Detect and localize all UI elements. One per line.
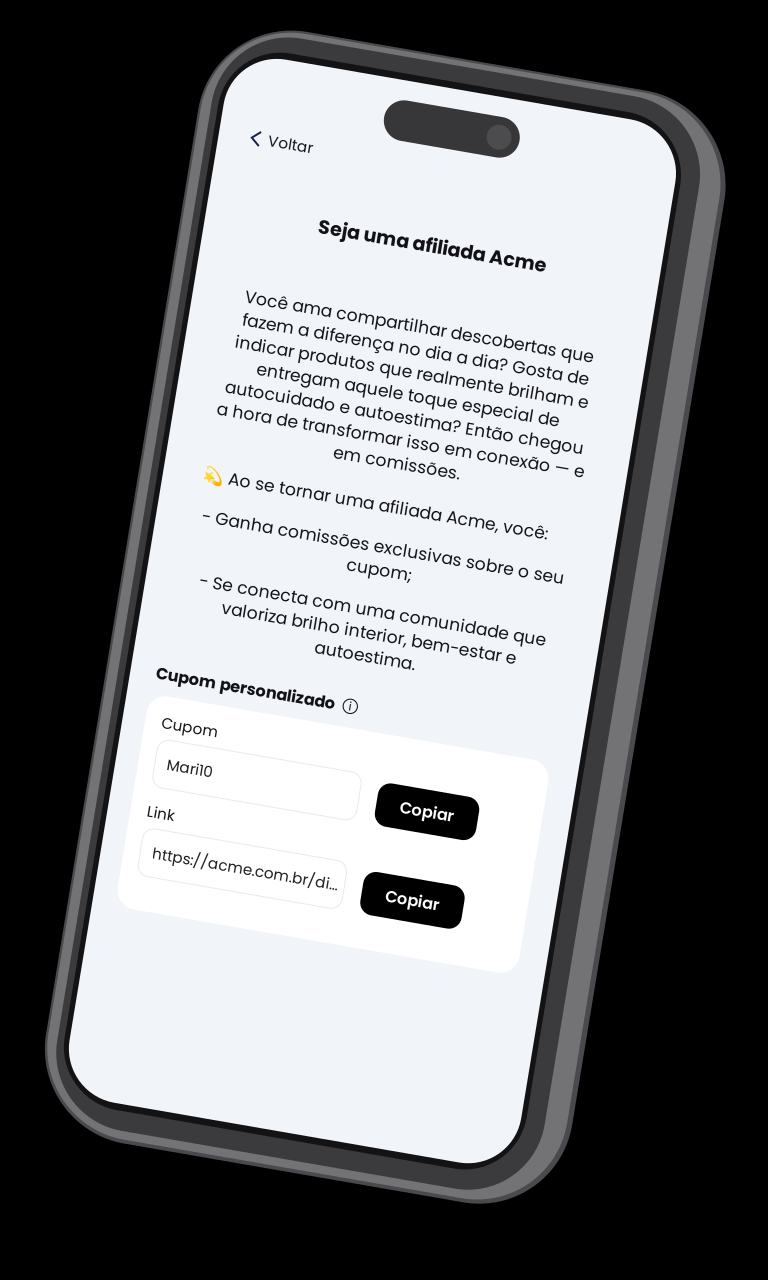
staticText: Mari10 [68,933,130,960]
staticText: Você ama compartilhar descobertas que fa… [56,303,550,516]
staticText: Cupom personalizado [34,815,275,844]
staticText: Seja uma afiliada Acme [150,193,457,227]
button[interactable]: Copiar [350,920,486,978]
staticText: Link [52,998,89,1025]
staticText: - Ganha comissões exclusivas sobre o seu… [60,599,547,660]
staticText: https://acme.com.br/discou... [68,1052,326,1079]
staticText: Cupom [52,880,128,907]
staticText: Ao se tornar uma afiliada Acme, você: [87,544,517,575]
staticText: - Se conecta com uma comunidade que valo… [70,684,536,775]
staticText: Copiar [381,935,454,964]
